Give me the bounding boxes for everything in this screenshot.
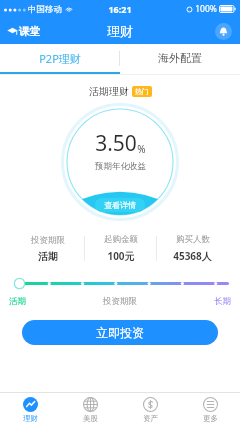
staticText: 海外配置 <box>158 51 202 65</box>
staticText: 45368人 <box>173 249 212 263</box>
staticText: 投资期限 <box>31 235 65 246</box>
button[interactable]: 资产 <box>120 393 180 427</box>
staticText: 理财 <box>23 414 38 423</box>
button[interactable]: 美股 <box>60 393 120 427</box>
staticText: 更多 <box>203 414 218 423</box>
staticText: 起购金额 <box>104 234 138 245</box>
staticText: 16:21 <box>108 3 132 15</box>
button[interactable]: 理财 <box>0 393 60 427</box>
button[interactable]: 海外配置 <box>120 44 240 72</box>
staticText: 100% <box>195 3 217 15</box>
staticText: % <box>137 142 146 156</box>
staticText: 美股 <box>83 414 98 423</box>
staticText: 查看详情 <box>104 200 136 210</box>
staticText: 中国移动 <box>28 4 62 15</box>
button[interactable]: 查看详情 <box>95 198 145 212</box>
staticText: 立即投资 <box>96 325 144 340</box>
button[interactable]: 更多 <box>180 393 240 427</box>
button[interactable]: Notifications <box>215 23 232 40</box>
button[interactable]: Investment term slider <box>9 276 231 291</box>
button[interactable]: 立即投资 <box>22 320 218 345</box>
staticText: 预期年化收益 <box>95 161 146 172</box>
staticText: 活期 <box>9 296 26 307</box>
staticText: 热门 <box>135 87 149 96</box>
staticText: 长期 <box>214 296 231 307</box>
staticText: 3.50 <box>95 129 137 158</box>
staticText: 资产 <box>143 414 158 423</box>
staticText: P2P理财 <box>39 51 81 66</box>
staticText: 100元 <box>107 249 135 263</box>
button[interactable]: P2P理财 <box>0 44 119 72</box>
staticText: 理财 <box>107 23 133 39</box>
staticText: 活期 <box>38 250 58 263</box>
staticText: 投资期限 <box>103 296 137 307</box>
staticText: 活期理财 <box>89 85 129 98</box>
staticText: 购买人数 <box>176 234 210 245</box>
staticText: 课堂 <box>19 25 40 38</box>
button[interactable]: 课堂 <box>7 25 40 38</box>
